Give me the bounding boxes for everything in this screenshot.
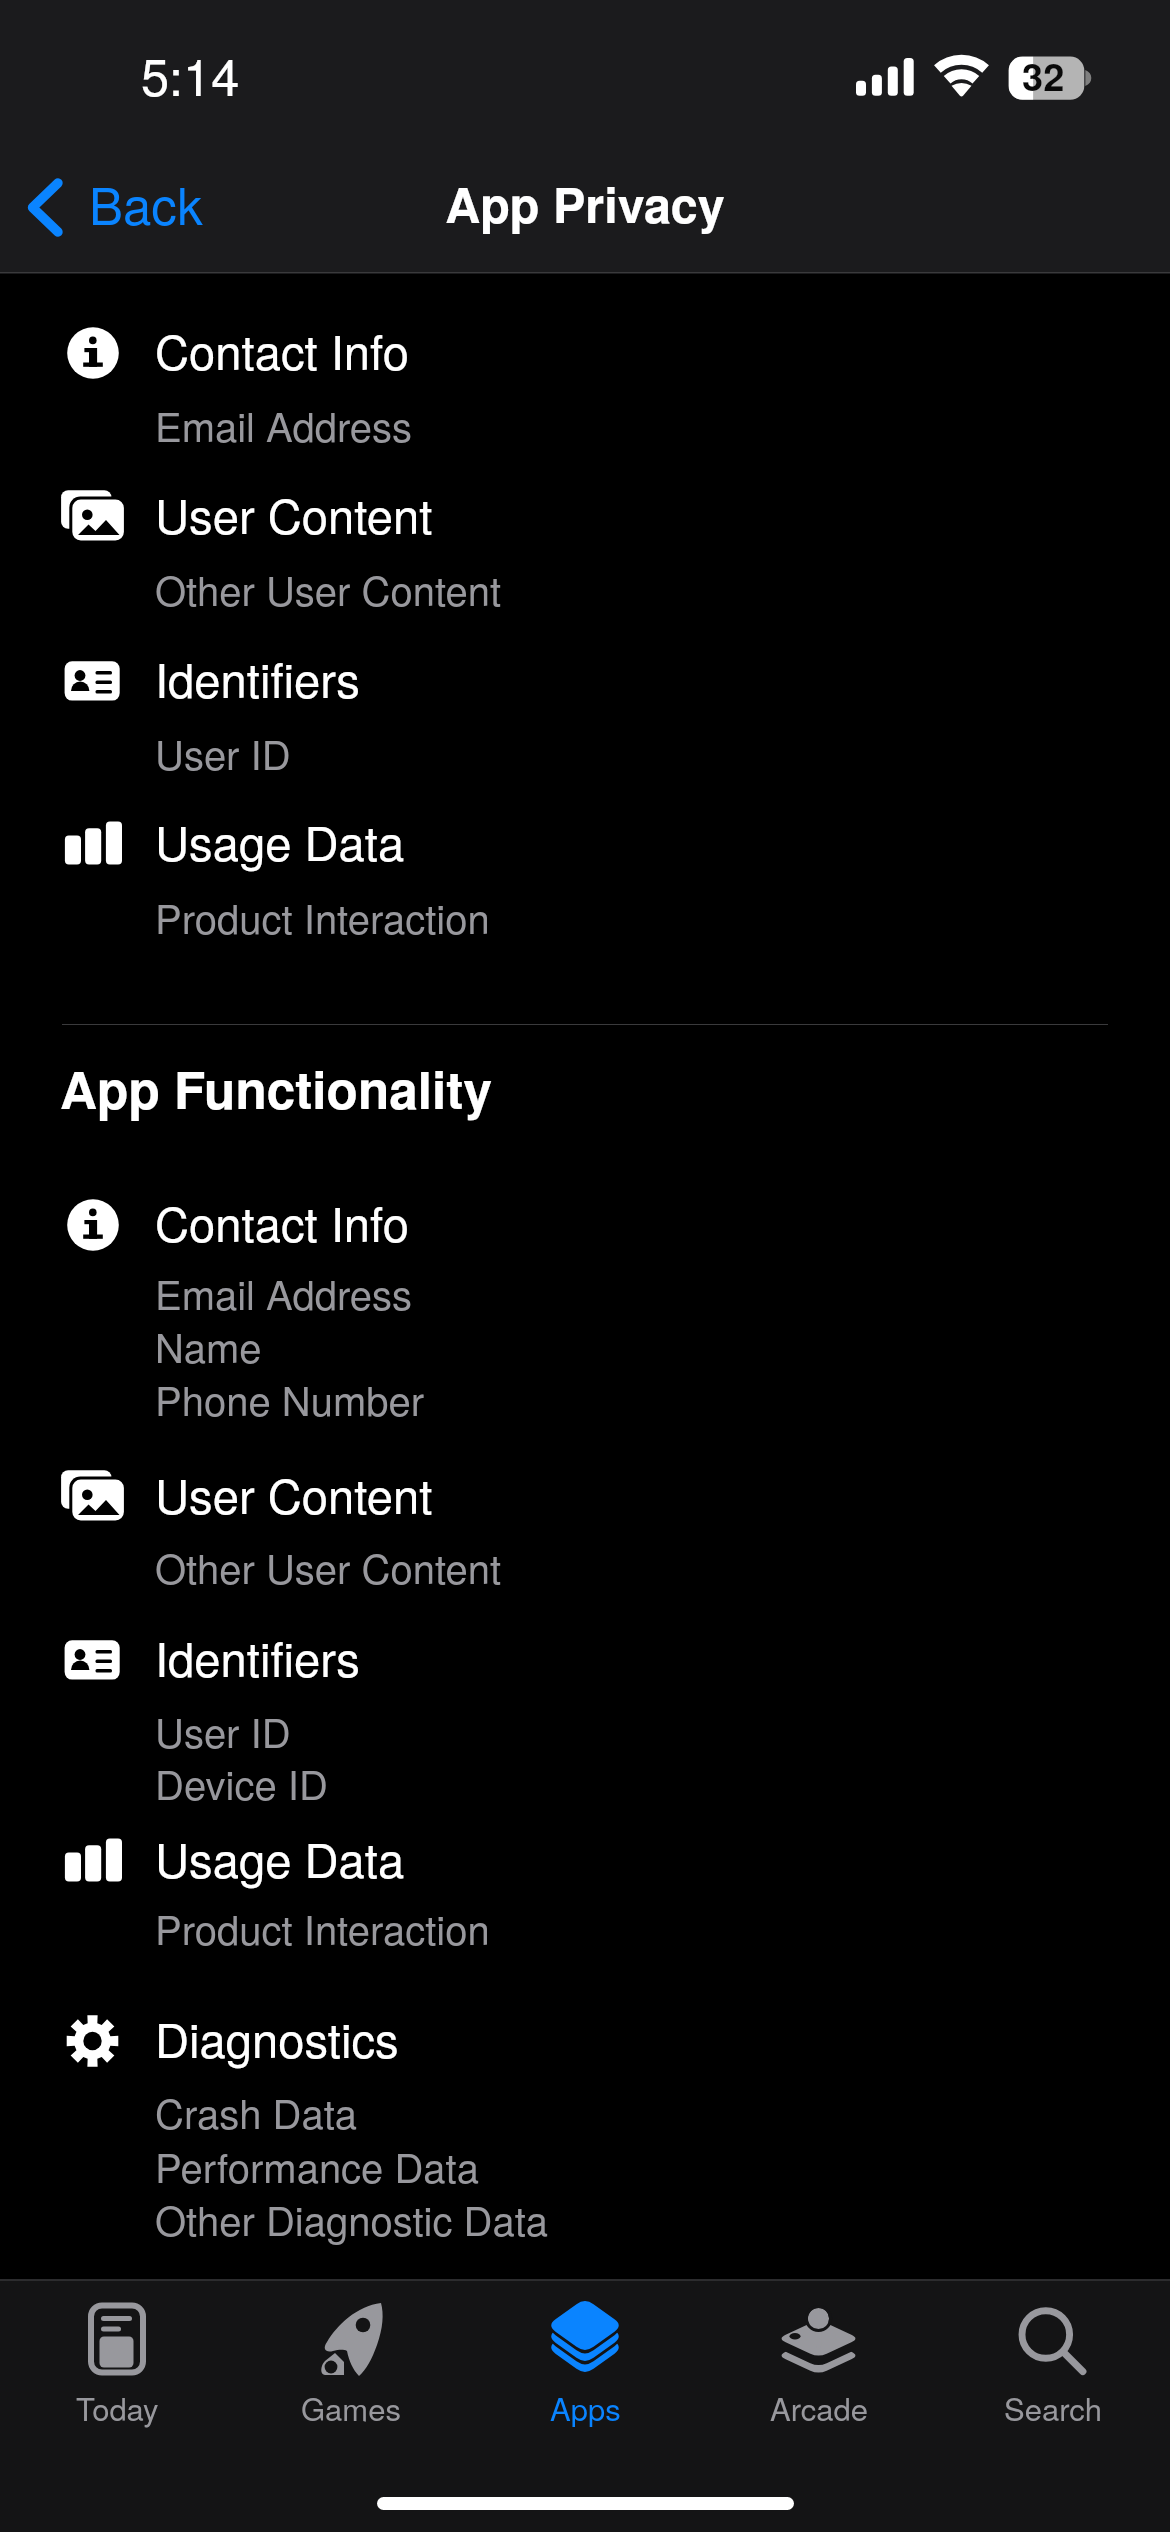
staticText: User ID [155, 1702, 291, 1759]
button[interactable]: Back [15, 154, 209, 254]
staticText: Search [1004, 2385, 1103, 2429]
staticText: Games [301, 2385, 401, 2429]
staticText: Usage Data [155, 807, 405, 875]
staticText: Arcade [770, 2385, 869, 2429]
staticText: User ID [155, 724, 291, 781]
staticText: Back [89, 166, 203, 239]
other: Identifiers [60, 1630, 126, 1690]
button[interactable]: Arcade [702, 2279, 936, 2434]
staticText: 5:14 [141, 38, 240, 110]
staticText: Performance Data [155, 2137, 479, 2194]
staticText: App Privacy [445, 168, 725, 237]
staticText: User Content [155, 1460, 433, 1528]
staticText: Other User Content [155, 1538, 501, 1595]
staticText: Product Interaction [155, 1899, 490, 1956]
other: Identifiers [60, 651, 126, 711]
staticText: Contact Info [155, 316, 409, 384]
staticText: Email Address [155, 1264, 413, 1321]
staticText: Usage Data [155, 1824, 405, 1892]
staticText: Identifiers [155, 644, 360, 712]
staticText: Identifiers [155, 1623, 360, 1691]
button[interactable]: Usage Data [40, 1816, 1130, 1956]
button[interactable]: Identifiers [40, 1615, 1130, 1811]
button[interactable]: Diagnostics [40, 1996, 1130, 2247]
staticText: App Functionality [60, 1051, 492, 1124]
other: User Content [60, 487, 126, 547]
other: Contact Info [60, 1195, 126, 1255]
staticText: Other Diagnostic Data [155, 2190, 549, 2247]
staticText: Email Address [155, 396, 413, 453]
button[interactable]: User Content [40, 1452, 1130, 1595]
staticText: Name [155, 1317, 262, 1374]
staticText: 32 [1022, 48, 1065, 102]
button[interactable]: User Content [40, 472, 1130, 617]
staticText: Today [76, 2385, 159, 2429]
staticText: Product Interaction [155, 888, 490, 945]
other: Contact Info [60, 323, 126, 383]
other: Diagnostics [60, 2011, 126, 2071]
button[interactable]: Apps [468, 2279, 702, 2434]
staticText: Device ID [155, 1754, 328, 1811]
button[interactable]: Today [0, 2279, 234, 2434]
button[interactable]: Search [936, 2279, 1170, 2434]
button[interactable]: Usage Data [40, 799, 1130, 945]
staticText: Apps [550, 2385, 621, 2429]
staticText: Contact Info [155, 1188, 409, 1256]
staticText: Other User Content [155, 560, 501, 617]
other: User Content [60, 1467, 126, 1527]
button[interactable]: Games [234, 2279, 468, 2434]
other: Usage Data [60, 1831, 126, 1891]
other: Usage Data [60, 814, 126, 874]
staticText: Diagnostics [155, 2004, 399, 2072]
staticText: Crash Data [155, 2083, 358, 2140]
button[interactable]: Contact Info [40, 308, 1130, 453]
button[interactable]: Contact Info [40, 1180, 1130, 1427]
staticText: User Content [155, 480, 433, 548]
button[interactable]: Identifiers [40, 636, 1130, 781]
staticText: Phone Number [155, 1370, 424, 1427]
